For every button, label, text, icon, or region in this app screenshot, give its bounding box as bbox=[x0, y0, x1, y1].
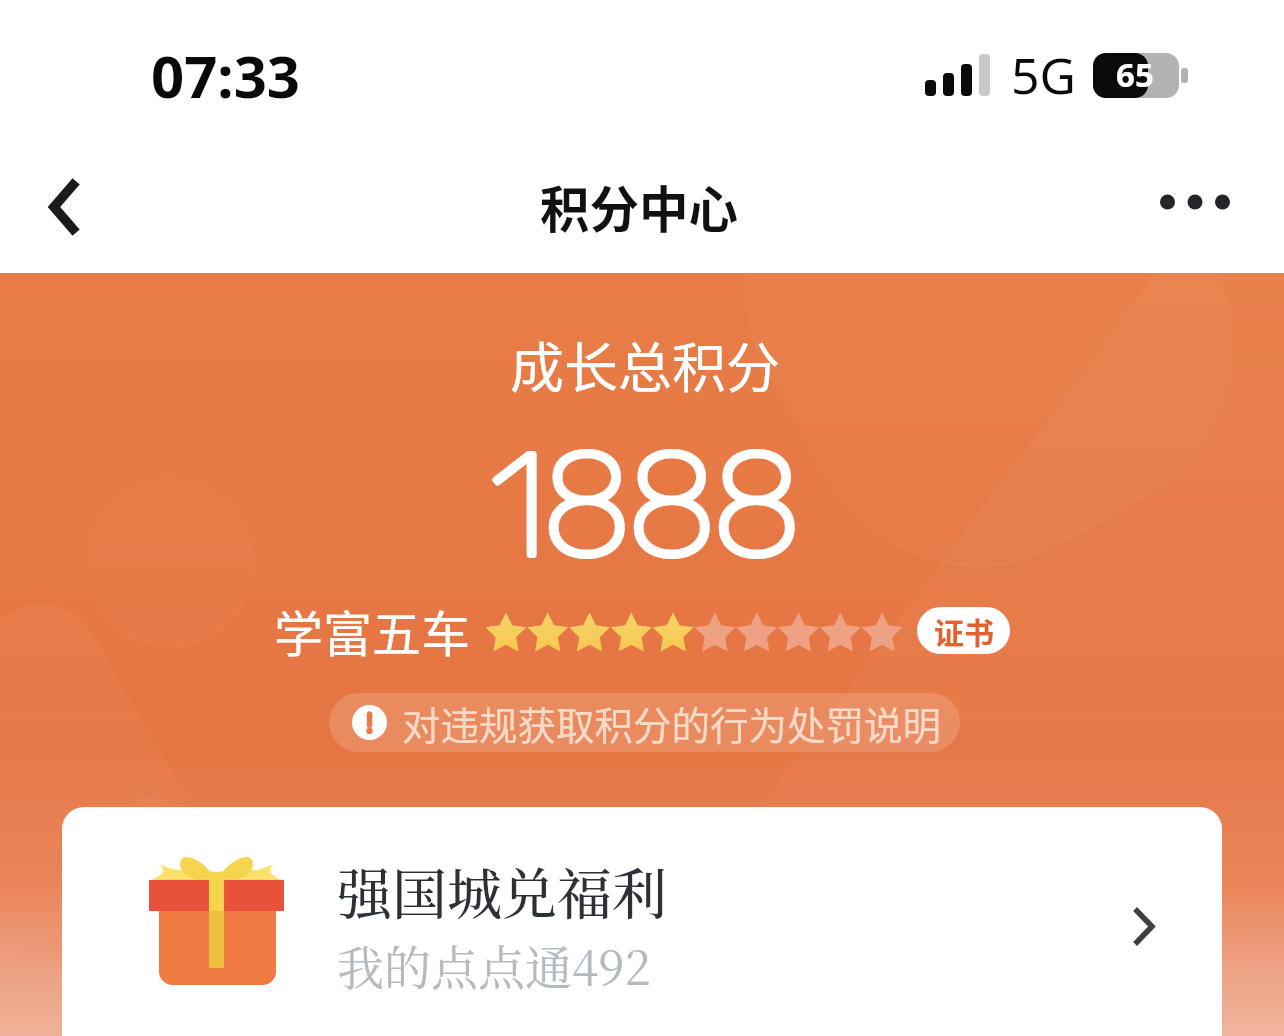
button[interactable]: 强国城兑福利 bbox=[62, 807, 1222, 1036]
staticText: 1888 bbox=[488, 416, 795, 566]
button[interactable]: More options bbox=[1148, 150, 1258, 260]
staticText: 我的点点通492 bbox=[337, 931, 651, 999]
staticText: 积分中心 bbox=[540, 171, 738, 243]
staticText: 成长总积分 bbox=[510, 325, 780, 403]
staticText: 07:33 bbox=[151, 36, 301, 115]
staticText: 强国城兑福利 bbox=[337, 851, 668, 930]
staticText: 证书 bbox=[934, 609, 994, 652]
button[interactable]: 证书 bbox=[917, 607, 1010, 654]
staticText: 对违规获取积分的行为处罚说明 bbox=[402, 695, 942, 751]
staticText: 学富五车 bbox=[274, 595, 471, 666]
staticText: 65 bbox=[1116, 52, 1154, 97]
button[interactable]: 对违规获取积分的行为处罚说明 bbox=[329, 693, 960, 752]
button[interactable]: Back bbox=[12, 152, 122, 262]
staticText: 5G bbox=[1011, 41, 1076, 109]
